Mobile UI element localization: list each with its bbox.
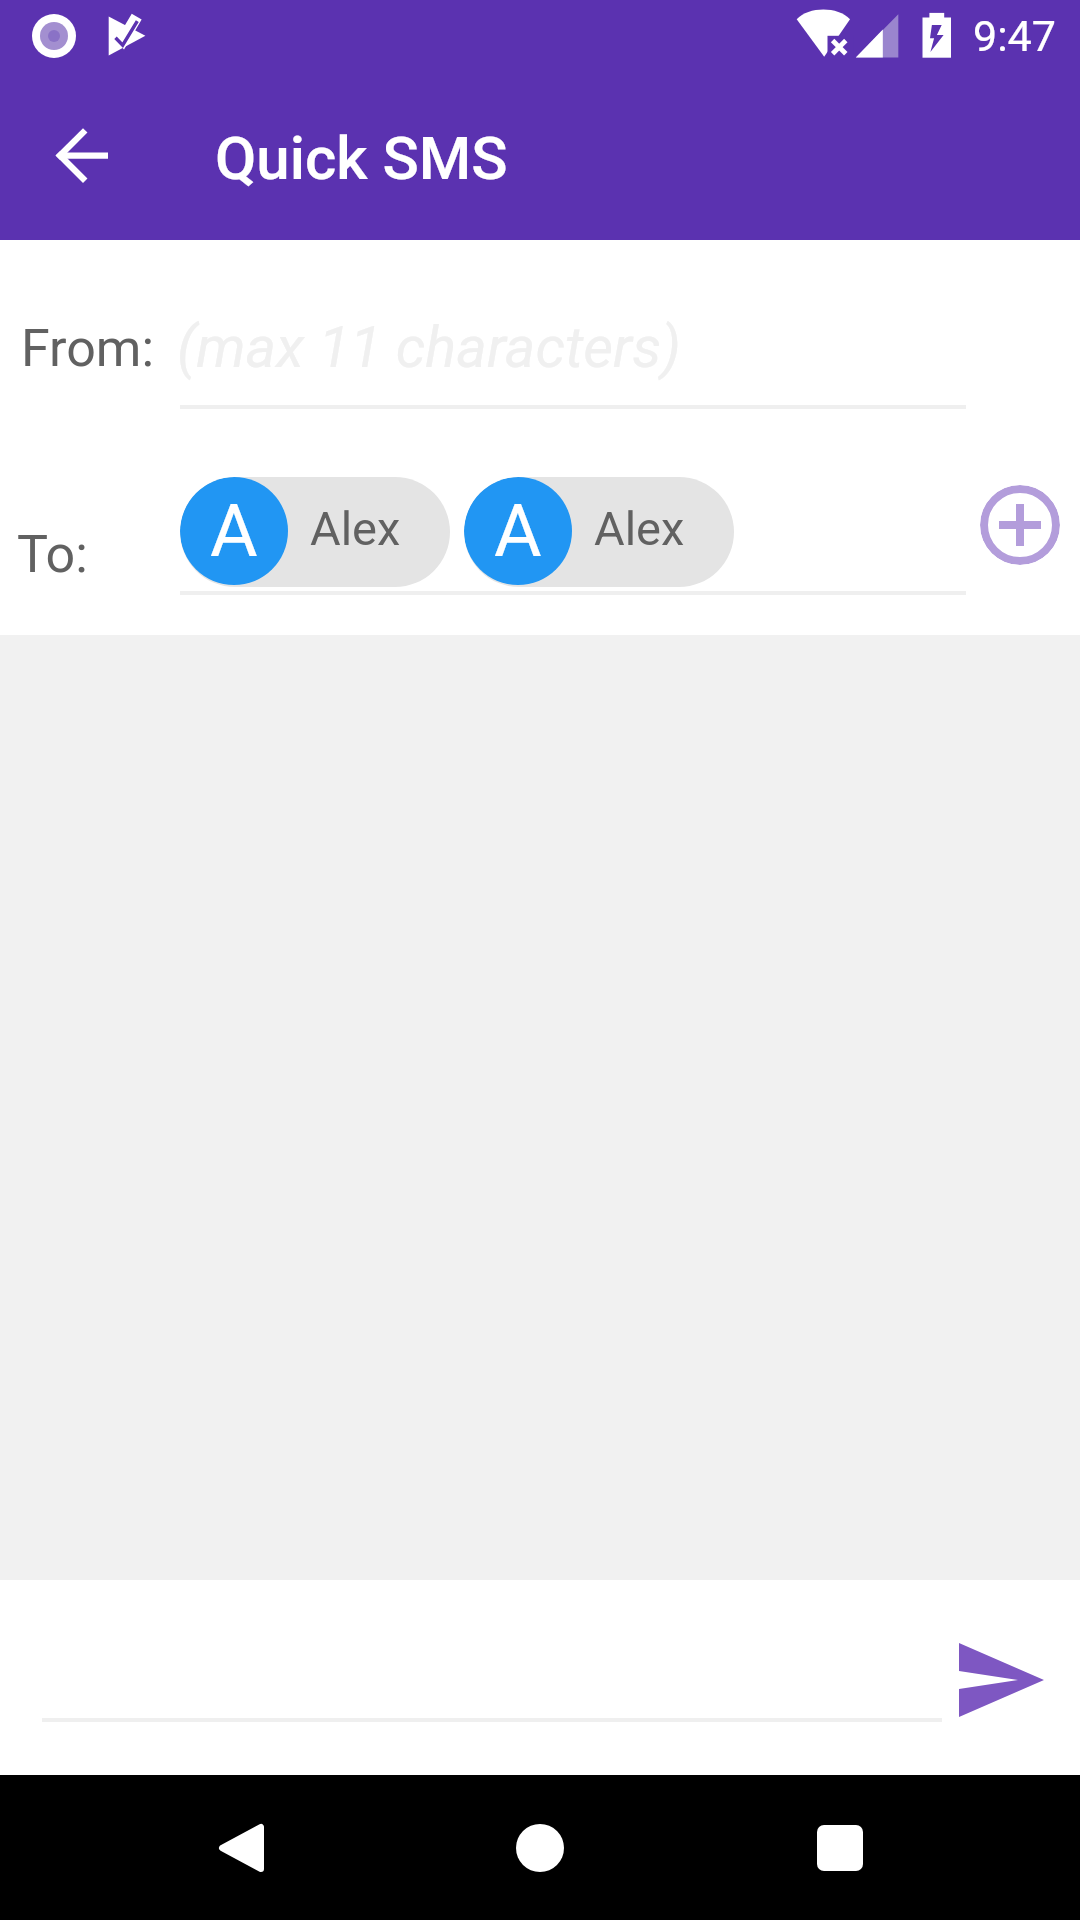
staticText: 9:47 [973,11,1056,61]
button[interactable]: Sender name field [180,300,966,409]
button[interactable]: Back [180,1788,300,1908]
button[interactable]: A [464,477,734,587]
staticText: Alex [594,501,685,556]
button[interactable]: Recent apps [780,1788,900,1908]
button[interactable]: A [180,477,450,587]
staticText: A [210,488,258,574]
staticText: Alex [310,501,401,556]
staticText: To: [17,524,88,585]
staticText: Quick SMS [215,123,508,193]
button[interactable]: Add recipient [980,485,1060,565]
staticText: A [494,488,542,574]
button[interactable]: Send [940,1630,1056,1725]
button[interactable]: Home [480,1788,600,1908]
staticText: From: [21,318,155,379]
staticText: (max 11 characters) [177,313,681,381]
button[interactable]: Navigate up [24,96,144,216]
